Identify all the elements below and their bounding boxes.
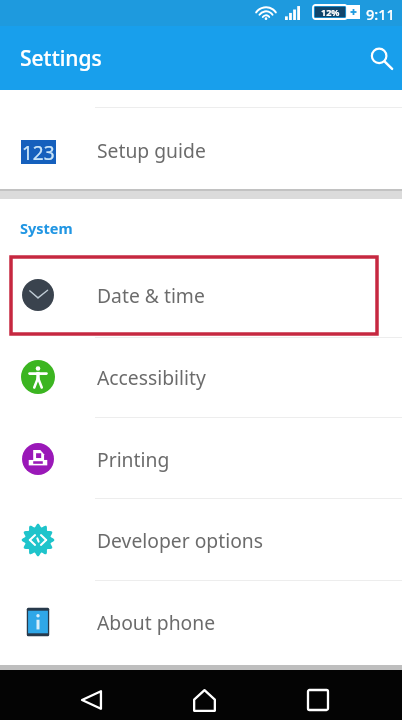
- button[interactable]: Recent apps: [288, 670, 348, 720]
- button[interactable]: Search: [359, 36, 402, 82]
- button[interactable]: Developer options: [0, 500, 402, 580]
- staticText: About phone: [97, 609, 216, 635]
- staticText: 9:11: [366, 4, 395, 24]
- staticText: 12%: [321, 6, 340, 18]
- staticText: Settings: [20, 44, 102, 73]
- staticText: Printing: [97, 446, 170, 472]
- staticText: System: [20, 218, 73, 238]
- button[interactable]: Back: [61, 670, 121, 720]
- button[interactable]: Date & time: [0, 255, 402, 335]
- staticText: Date & time: [97, 282, 205, 308]
- staticText: Setup guide: [97, 137, 206, 163]
- button[interactable]: Home: [174, 670, 234, 720]
- staticText: 123: [22, 140, 55, 164]
- staticText: Developer options: [97, 527, 263, 553]
- button[interactable]: 123: [0, 110, 402, 190]
- button[interactable]: Accessibility: [0, 337, 402, 417]
- button[interactable]: Printing: [0, 419, 402, 499]
- button[interactable]: About phone: [0, 582, 402, 662]
- staticText: Accessibility: [97, 364, 206, 390]
